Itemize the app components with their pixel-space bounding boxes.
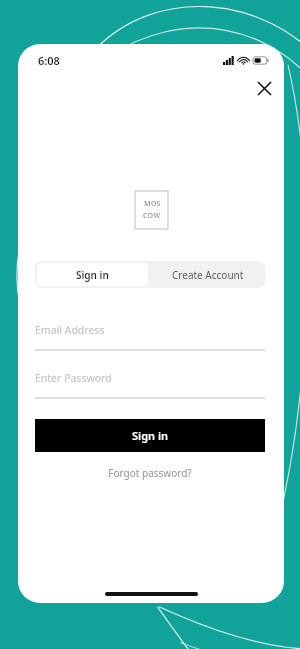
button[interactable]: Email Address	[35, 321, 265, 351]
staticText: Enter Password	[35, 371, 112, 385]
staticText: 6:08	[38, 53, 60, 68]
button[interactable]: Enter Password	[35, 369, 265, 399]
button[interactable]: Create Account	[150, 261, 265, 288]
staticText: Forgot password?	[108, 466, 192, 480]
staticText: MOS	[144, 199, 161, 209]
staticText: Email Address	[35, 323, 105, 337]
button[interactable]: Close	[250, 74, 278, 102]
staticText: Sign in	[132, 428, 169, 443]
staticText: Sign in	[76, 268, 109, 282]
staticText: COW	[143, 211, 161, 221]
staticText: Create Account	[172, 268, 244, 282]
button[interactable]: Sign in	[35, 419, 265, 452]
button[interactable]: Forgot password?	[35, 462, 265, 484]
button[interactable]: Sign in	[37, 263, 148, 286]
